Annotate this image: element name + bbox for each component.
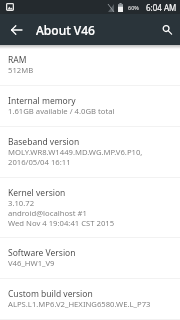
staticText: Baseband version xyxy=(8,136,80,147)
staticText: 6:04 AM xyxy=(146,2,177,13)
staticText: 512MB xyxy=(8,65,34,75)
staticText: 60% xyxy=(128,4,139,11)
button[interactable]: Baseband version xyxy=(0,127,180,178)
staticText: RAM xyxy=(8,54,27,65)
button[interactable]: Software Version xyxy=(0,238,180,279)
staticText: MOLY.WR8.W1449.MD.WG.MP.V6.P10, xyxy=(8,147,143,157)
staticText: 1.61GB available / 4.0GB total xyxy=(8,106,115,116)
staticText: Kernel version xyxy=(8,187,66,198)
staticText: Software Version xyxy=(8,247,76,258)
button[interactable]: RAM xyxy=(0,45,180,86)
button[interactable]: Kernel version xyxy=(0,178,180,238)
staticText: Wed Nov 4 19:04:41 CST 2015 xyxy=(8,218,115,228)
staticText: 3.10.72 xyxy=(8,198,35,208)
staticText: Internal memory xyxy=(8,95,76,106)
button[interactable]: Search xyxy=(155,18,179,42)
staticText: V46_HW1_V9 xyxy=(8,258,55,268)
button[interactable]: Custom build version xyxy=(0,279,180,320)
staticText: Custom build version xyxy=(8,288,93,299)
button[interactable]: Navigate up xyxy=(4,18,28,42)
staticText: About V46 xyxy=(36,22,95,38)
staticText: ALPS.L1.MP6.V2_HEXING6580.WE.L_P73 xyxy=(8,299,151,309)
staticText: 2016/05/04 16:11 xyxy=(8,157,71,167)
button[interactable]: Internal memory xyxy=(0,86,180,127)
staticText: android@localhost #1 xyxy=(8,208,87,218)
